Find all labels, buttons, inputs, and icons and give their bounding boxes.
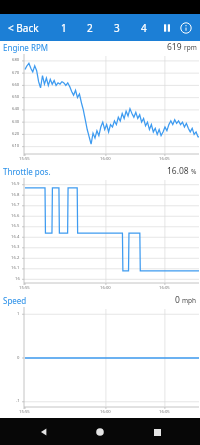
staticText: 660 — [12, 82, 20, 88]
staticText: 630 — [12, 119, 20, 125]
staticText: % — [191, 167, 197, 176]
staticText: 0 — [17, 355, 20, 361]
button[interactable]: Back — [31, 419, 57, 445]
staticText: 2 — [87, 21, 93, 35]
staticText: 16.4 — [11, 234, 20, 240]
staticText: 16.9 — [11, 181, 20, 187]
staticText: 16:05 — [159, 285, 170, 291]
staticText: Throttle pos. — [3, 166, 51, 177]
button[interactable]: 2 — [77, 16, 103, 40]
staticText: Engine RPM — [3, 42, 48, 53]
button[interactable]: Home — [87, 419, 113, 445]
staticText: 620 — [12, 131, 20, 137]
staticText: 610 — [12, 143, 20, 149]
staticText: 640 — [12, 106, 20, 112]
staticText: 15:55 — [19, 156, 30, 162]
staticText: 4 — [141, 21, 147, 35]
staticText: 16:00 — [100, 409, 111, 415]
staticText: 15:55 — [19, 409, 30, 415]
staticText: Speed — [3, 295, 27, 306]
button[interactable]: 1 — [51, 16, 77, 40]
button[interactable]: Throttle pos. — [0, 165, 200, 177]
button[interactable]: Recent apps — [144, 419, 170, 445]
staticText: rpm — [184, 43, 197, 52]
button[interactable]: 3 — [103, 16, 130, 40]
staticText: 16 — [15, 276, 20, 282]
staticText: 15:55 — [19, 285, 30, 291]
button[interactable]: Engine RPM — [0, 41, 200, 53]
button[interactable]: < Back — [0, 16, 43, 40]
staticText: < Back — [8, 21, 39, 35]
staticText: 16.08 — [167, 165, 189, 177]
staticText: 1 — [17, 311, 20, 317]
staticText: 16:05 — [159, 156, 170, 162]
staticText: 0 — [175, 294, 180, 306]
staticText: 16.8 — [11, 192, 20, 198]
staticText: -1 — [16, 398, 20, 404]
staticText: 16.1 — [11, 265, 20, 271]
staticText: 16.2 — [11, 255, 20, 261]
staticText: 670 — [12, 70, 20, 76]
staticText: 16.5 — [11, 223, 20, 229]
staticText: 680 — [12, 57, 20, 63]
staticText: 16:05 — [159, 409, 170, 415]
staticText: 619 — [167, 41, 182, 53]
staticText: 16.7 — [11, 202, 20, 208]
staticText: 16.6 — [11, 213, 20, 219]
staticText: 16.3 — [11, 244, 20, 250]
staticText: 16:00 — [100, 285, 111, 291]
staticText: 3 — [114, 21, 120, 35]
button[interactable]: 4 — [130, 16, 157, 40]
button[interactable]: Info — [176, 18, 195, 37]
button[interactable]: Pause — [157, 18, 176, 37]
staticText: 650 — [12, 94, 20, 100]
staticText: 16:00 — [100, 156, 111, 162]
staticText: 1 — [61, 21, 67, 35]
button[interactable]: Speed — [0, 294, 200, 306]
staticText: mph — [182, 296, 197, 305]
